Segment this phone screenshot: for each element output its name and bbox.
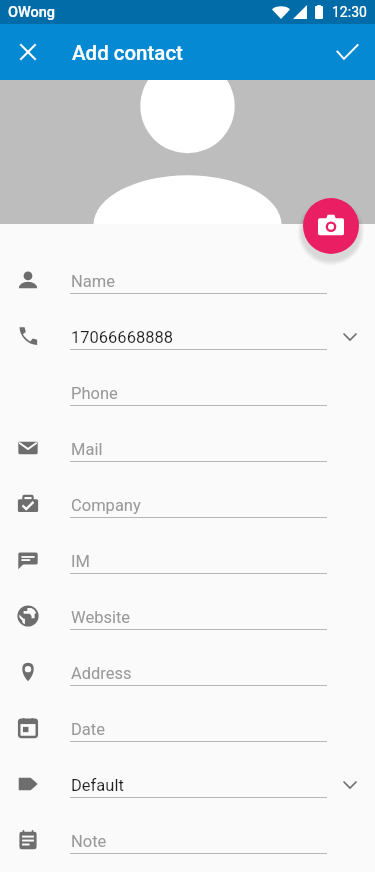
button[interactable]: Date [0, 686, 375, 742]
staticText: Phone [71, 384, 118, 403]
button[interactable]: Default [0, 742, 375, 798]
staticText: 12:30 [332, 4, 367, 20]
staticText: Add contact [72, 41, 183, 65]
staticText: IM [71, 552, 90, 571]
button[interactable]: Contact photo [0, 80, 375, 224]
button[interactable]: Save [323, 28, 371, 76]
staticText: Address [71, 664, 132, 683]
staticText: OWong [8, 4, 56, 21]
button[interactable]: Phone [0, 350, 375, 406]
staticText: Mail [71, 440, 103, 459]
button[interactable]: Website [0, 574, 375, 630]
button[interactable]: Change photo [303, 198, 359, 254]
button[interactable]: Close [4, 28, 52, 76]
staticText: Date [71, 720, 105, 739]
staticText: Default [71, 776, 124, 795]
button[interactable]: Note [0, 798, 375, 854]
staticText: Company [71, 496, 141, 515]
button[interactable]: Mail [0, 406, 375, 462]
staticText: 17066668888 [71, 328, 174, 347]
staticText: Name [71, 272, 115, 291]
button[interactable]: IM [0, 518, 375, 574]
button[interactable]: Name [0, 238, 375, 294]
button[interactable]: Address [0, 630, 375, 686]
button[interactable]: Company [0, 462, 375, 518]
staticText: Website [71, 608, 131, 627]
button[interactable]: 17066668888 [0, 294, 375, 350]
staticText: Note [71, 832, 107, 851]
